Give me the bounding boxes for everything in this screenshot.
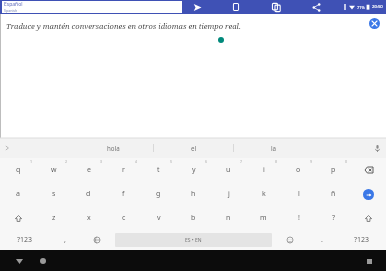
- button[interactable]: ?: [316, 206, 351, 230]
- button[interactable]: Share: [309, 0, 323, 14]
- button[interactable]: Español: [2, 1, 182, 13]
- button[interactable]: 1: [0, 158, 36, 182]
- button[interactable]: h: [176, 182, 211, 206]
- staticText: 5: [170, 159, 173, 164]
- staticText: 0: [345, 159, 348, 164]
- staticText: ?: [332, 213, 336, 223]
- staticText: 7: [240, 159, 243, 164]
- staticText: p: [331, 165, 336, 175]
- staticText: u: [226, 165, 231, 175]
- button[interactable]: 3: [71, 158, 106, 182]
- staticText: t: [157, 165, 160, 175]
- button[interactable]: Backspace: [351, 158, 386, 182]
- staticText: el: [191, 144, 197, 152]
- staticText: 20:50: [372, 4, 383, 10]
- staticText: s: [52, 189, 56, 199]
- button[interactable]: 2: [36, 158, 71, 182]
- button[interactable]: ñ: [316, 182, 351, 206]
- button[interactable]: 4: [106, 158, 141, 182]
- staticText: y: [192, 165, 196, 175]
- button[interactable]: s: [36, 182, 71, 206]
- button[interactable]: Voice input: [372, 143, 382, 153]
- staticText: w: [51, 165, 57, 175]
- staticText: ?123: [354, 235, 370, 245]
- button[interactable]: Emoji: [274, 230, 306, 250]
- button[interactable]: l: [281, 182, 316, 206]
- staticText: d: [86, 189, 91, 199]
- button[interactable]: z: [36, 206, 71, 230]
- staticText: 8: [275, 159, 278, 164]
- button[interactable]: la: [234, 138, 313, 158]
- staticText: .: [321, 235, 323, 245]
- button[interactable]: Expand suggestions: [2, 143, 12, 153]
- staticText: x: [87, 213, 91, 223]
- button[interactable]: a: [0, 182, 36, 206]
- button[interactable]: Change keyboard language: [81, 230, 113, 250]
- staticText: q: [16, 165, 21, 175]
- button[interactable]: Paste: [229, 0, 243, 14]
- staticText: ñ: [331, 189, 336, 199]
- button[interactable]: 5: [141, 158, 176, 182]
- staticText: e: [87, 165, 91, 175]
- button[interactable]: v: [141, 206, 176, 230]
- button[interactable]: f: [106, 182, 141, 206]
- button[interactable]: ,: [49, 230, 81, 250]
- staticText: 3: [100, 159, 103, 164]
- staticText: ES • EN: [185, 237, 202, 244]
- staticText: r: [122, 165, 125, 175]
- button[interactable]: m: [246, 206, 281, 230]
- staticText: h: [191, 189, 196, 199]
- staticText: i: [263, 165, 265, 175]
- button[interactable]: Copy: [269, 0, 283, 14]
- staticText: 4: [135, 159, 138, 164]
- button[interactable]: ?123: [0, 230, 49, 250]
- button[interactable]: j: [211, 182, 246, 206]
- staticText: Spanish: [4, 8, 18, 13]
- staticText: b: [191, 213, 196, 223]
- staticText: ,: [64, 235, 66, 245]
- staticText: l: [298, 189, 300, 199]
- button[interactable]: c: [106, 206, 141, 230]
- button[interactable]: g: [141, 182, 176, 206]
- button[interactable]: Shift: [351, 206, 386, 230]
- staticText: m: [260, 213, 267, 223]
- staticText: k: [262, 189, 266, 199]
- staticText: Traduce y mantén conversaciones en otros…: [6, 21, 241, 31]
- button[interactable]: 8: [246, 158, 281, 182]
- staticText: 9: [310, 159, 313, 164]
- button[interactable]: Clear text: [369, 18, 380, 29]
- staticText: 6: [205, 159, 208, 164]
- staticText: g: [156, 189, 161, 199]
- button[interactable]: Recent apps: [362, 254, 376, 268]
- staticText: c: [122, 213, 126, 223]
- button[interactable]: 7: [211, 158, 246, 182]
- button[interactable]: k: [246, 182, 281, 206]
- button[interactable]: 9: [281, 158, 316, 182]
- staticText: Español: [4, 1, 23, 8]
- button[interactable]: ES • EN: [115, 233, 272, 247]
- staticText: 1: [30, 159, 33, 164]
- staticText: j: [228, 189, 230, 199]
- button[interactable]: x: [71, 206, 106, 230]
- button[interactable]: n: [211, 206, 246, 230]
- staticText: v: [157, 213, 161, 223]
- button[interactable]: hola: [74, 138, 153, 158]
- button[interactable]: ?123: [338, 230, 386, 250]
- button[interactable]: !: [281, 206, 316, 230]
- button[interactable]: Shift: [0, 206, 36, 230]
- button[interactable]: Send: [190, 0, 204, 14]
- button[interactable]: 0: [316, 158, 351, 182]
- button[interactable]: Enter: [363, 189, 374, 200]
- button[interactable]: Home: [36, 254, 50, 268]
- button[interactable]: Hide keyboard: [12, 254, 26, 268]
- staticText: 71%: [357, 5, 365, 10]
- staticText: a: [16, 189, 20, 199]
- button[interactable]: el: [154, 138, 233, 158]
- button[interactable]: 6: [176, 158, 211, 182]
- staticText: f: [122, 189, 125, 199]
- staticText: n: [226, 213, 231, 223]
- button[interactable]: d: [71, 182, 106, 206]
- staticText: 2: [65, 159, 68, 164]
- button[interactable]: b: [176, 206, 211, 230]
